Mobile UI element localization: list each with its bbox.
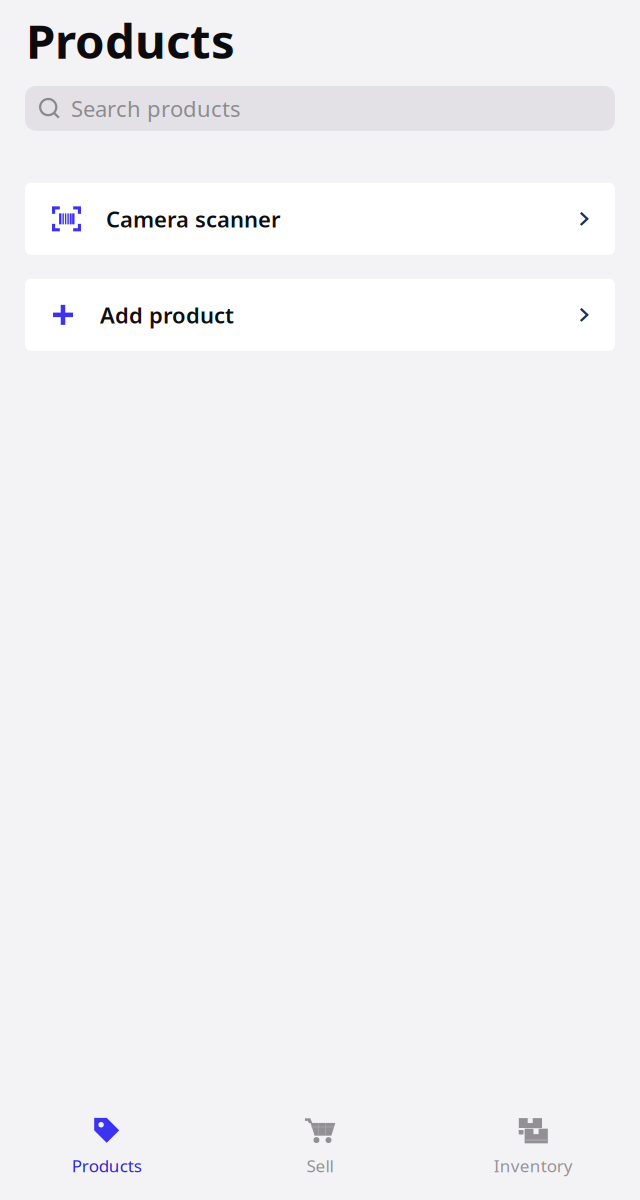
staticText: Sell — [306, 1154, 333, 1177]
button[interactable]: Camera scanner — [25, 183, 615, 255]
button[interactable]: Sell — [213, 1117, 427, 1177]
staticText: Inventory — [494, 1154, 573, 1177]
staticText: Products — [72, 1154, 142, 1177]
staticText: Camera scanner — [106, 204, 281, 233]
button[interactable]: Add product — [25, 279, 615, 351]
staticText: Products — [26, 9, 235, 72]
button[interactable]: Products — [0, 1117, 213, 1177]
staticText: Add product — [100, 300, 234, 329]
button[interactable]: Inventory — [427, 1117, 640, 1177]
button[interactable]: Search products — [25, 86, 615, 131]
staticText: Search products — [71, 94, 241, 123]
